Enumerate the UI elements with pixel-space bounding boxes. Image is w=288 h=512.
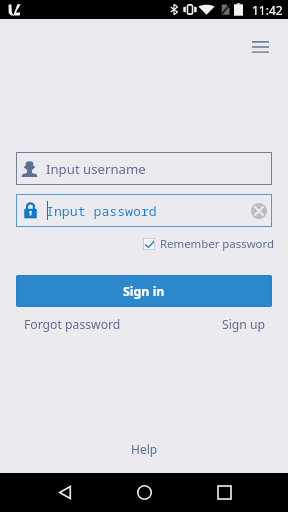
- button[interactable]: Menu: [246, 33, 274, 61]
- staticText: 11:42: [252, 2, 283, 18]
- staticText: Help: [131, 441, 158, 457]
- staticText: Sign up: [222, 316, 266, 333]
- button[interactable]: Forgot password: [20, 314, 125, 334]
- staticText: Input password: [46, 202, 157, 220]
- button[interactable]: Input username: [16, 152, 272, 185]
- staticText: Sign in: [123, 283, 165, 300]
- button[interactable]: Recent apps: [204, 473, 244, 512]
- staticText: Forgot password: [24, 316, 121, 333]
- button[interactable]: Input password: [16, 194, 272, 227]
- button[interactable]: Help: [123, 438, 166, 460]
- button[interactable]: Clear text: [251, 203, 267, 219]
- button[interactable]: Back: [45, 473, 85, 512]
- staticText: Input username: [46, 160, 146, 178]
- button[interactable]: Remember password: [143, 236, 274, 252]
- button[interactable]: Home: [124, 473, 164, 512]
- button[interactable]: Sign in: [16, 275, 272, 307]
- staticText: Remember password: [160, 236, 274, 252]
- button[interactable]: Sign up: [218, 314, 270, 334]
